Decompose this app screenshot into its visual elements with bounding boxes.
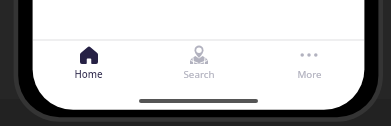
- button[interactable]: Home: [33, 0, 144, 110]
- staticText: Search: [183, 68, 215, 81]
- staticText: More: [297, 68, 322, 81]
- staticText: Home: [74, 68, 103, 81]
- button[interactable]: More: [254, 0, 364, 110]
- button[interactable]: Search: [144, 0, 254, 110]
